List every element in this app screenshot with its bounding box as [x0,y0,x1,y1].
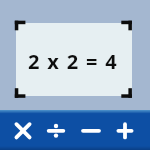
button[interactable]: Scan equation [16,23,132,96]
button[interactable]: Plus [108,111,142,150]
button[interactable]: Minus [74,111,108,150]
button[interactable]: Divide [39,111,73,150]
staticText: 2 x 2 = 4 [28,48,118,75]
button[interactable]: Multiply [6,111,40,150]
